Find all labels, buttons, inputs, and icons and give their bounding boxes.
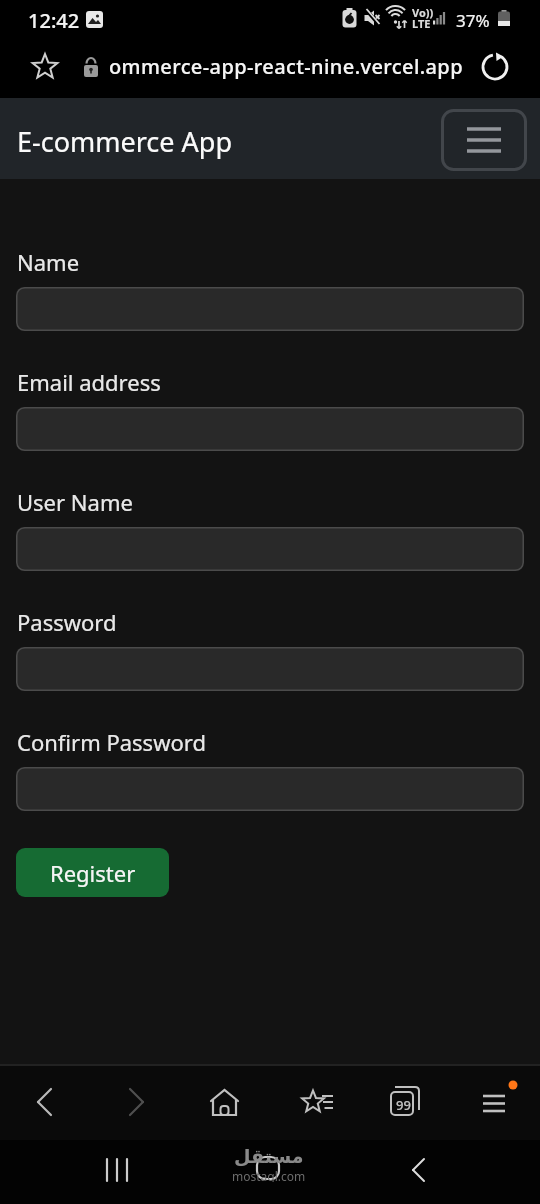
button[interactable] [16,647,524,691]
button[interactable] [16,287,524,331]
button[interactable] [296,1080,341,1125]
staticText: Email address [17,367,161,397]
button[interactable]: 99 [382,1077,427,1122]
staticText: Vo)) [412,5,434,20]
button[interactable] [16,407,524,451]
button[interactable] [114,1080,159,1125]
staticText: mostaql.com [232,1168,306,1182]
button[interactable] [397,1148,442,1193]
button[interactable] [16,527,524,571]
button[interactable]: Register [16,848,169,897]
staticText: E-commerce App [17,123,233,160]
staticText: مستقل [234,1145,304,1167]
staticText: 37% [456,9,490,32]
button[interactable] [481,52,509,80]
staticText: Name [17,247,80,277]
button[interactable] [31,52,59,80]
staticText: LTE [412,16,431,31]
button[interactable] [202,1080,247,1125]
button[interactable] [441,109,527,171]
staticText: Confirm Password [17,727,206,757]
staticText: 12:42 [28,7,80,34]
staticText: Register [50,858,136,888]
button[interactable] [16,767,524,811]
button[interactable]: ommerce-app-react-nine.vercel.app [109,53,463,80]
button[interactable] [474,1077,524,1122]
staticText: User Name [17,487,133,517]
staticText: 99 [396,1096,411,1114]
button[interactable] [95,1148,140,1193]
staticText: Password [17,607,117,637]
button[interactable] [22,1080,67,1125]
button[interactable] [245,1147,290,1192]
